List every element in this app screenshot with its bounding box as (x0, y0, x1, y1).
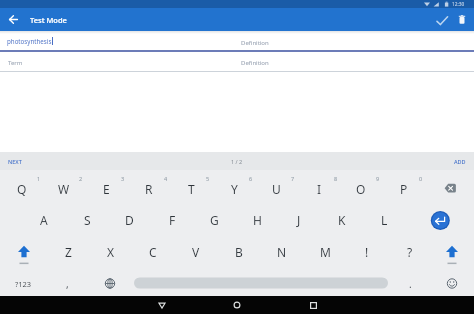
button[interactable]: H (240, 208, 274, 232)
button[interactable]: Y (217, 177, 251, 201)
staticText: K (338, 212, 346, 228)
button[interactable]: K (325, 208, 359, 232)
staticText: 1 (37, 175, 41, 182)
staticText: 2 (79, 175, 83, 182)
button[interactable]: ADD (414, 152, 474, 170)
staticText: E (103, 181, 110, 197)
staticText: A (40, 212, 48, 228)
button[interactable]: C (136, 240, 170, 264)
staticText: Definition (241, 59, 269, 67)
button[interactable]: photosynthesis (7, 37, 53, 45)
staticText: Q (17, 181, 27, 197)
staticText: O (356, 181, 366, 197)
staticText: F (169, 212, 176, 228)
button[interactable]: G (197, 208, 231, 232)
button[interactable]: X (94, 240, 128, 264)
button[interactable]: I (302, 177, 336, 201)
button[interactable]: , (50, 272, 84, 296)
button[interactable]: ?123 (6, 272, 40, 296)
button[interactable]: F (155, 208, 189, 232)
staticText: 3 (121, 175, 125, 182)
button[interactable]: N (265, 240, 299, 264)
staticText: D (125, 212, 134, 228)
button[interactable] (432, 11, 453, 30)
staticText: 4 (164, 175, 168, 182)
staticText: Y (231, 181, 238, 197)
staticText: W (58, 181, 70, 197)
button[interactable] (10, 241, 38, 263)
button[interactable] (223, 296, 251, 314)
button[interactable] (299, 296, 327, 314)
staticText: ? (407, 244, 413, 260)
staticText: P (400, 181, 408, 197)
staticText: T (188, 181, 195, 197)
staticText: C (149, 244, 157, 260)
staticText: Term (8, 59, 23, 67)
staticText: J (297, 212, 301, 228)
staticText: M (320, 244, 331, 260)
button[interactable]: A (27, 208, 61, 232)
button[interactable] (438, 241, 466, 263)
staticText: 12:30 (452, 1, 465, 8)
button[interactable] (436, 177, 466, 199)
staticText: Test Mode (30, 15, 67, 25)
button[interactable]: R (132, 177, 166, 201)
button[interactable] (453, 10, 471, 29)
staticText: 6 (249, 175, 253, 182)
button[interactable] (130, 272, 390, 294)
staticText: , (66, 277, 69, 291)
button[interactable]: U (259, 177, 293, 201)
button[interactable] (427, 209, 453, 231)
button[interactable] (5, 10, 21, 29)
staticText: NEXT (8, 158, 22, 165)
button[interactable]: ? (393, 240, 427, 264)
staticText: 9 (376, 175, 380, 182)
button[interactable]: O (344, 177, 378, 201)
button[interactable]: W (47, 177, 81, 201)
staticText: 7 (291, 175, 295, 182)
button[interactable]: ! (350, 240, 384, 264)
button[interactable]: E (89, 177, 123, 201)
button[interactable]: Z (51, 240, 85, 264)
staticText: U (272, 181, 281, 197)
button[interactable] (96, 272, 124, 294)
staticText: 5 (206, 175, 210, 182)
staticText: G (210, 212, 219, 228)
staticText: . (409, 277, 412, 291)
staticText: S (84, 212, 91, 228)
staticText: N (277, 244, 287, 260)
staticText: H (253, 212, 262, 228)
staticText: ADD (454, 158, 466, 165)
staticText: Z (65, 244, 72, 260)
staticText: L (381, 212, 388, 228)
staticText: ! (365, 244, 369, 260)
staticText: ?123 (15, 279, 32, 289)
staticText: V (192, 244, 200, 260)
button[interactable]: . (393, 272, 427, 296)
staticText: B (235, 244, 243, 260)
button[interactable]: L (367, 208, 401, 232)
staticText: Definition (241, 39, 269, 47)
button[interactable]: B (222, 240, 256, 264)
staticText: photosynthesis (7, 37, 52, 45)
button[interactable]: S (70, 208, 104, 232)
button[interactable]: T (174, 177, 208, 201)
staticText: R (145, 181, 153, 197)
button[interactable]: M (308, 240, 342, 264)
button[interactable]: D (112, 208, 146, 232)
staticText: 0 (419, 175, 423, 182)
staticText: X (107, 244, 115, 260)
button[interactable]: Q (5, 177, 39, 201)
button[interactable]: P (387, 177, 421, 201)
button[interactable]: V (179, 240, 213, 264)
button[interactable] (148, 296, 176, 314)
button[interactable]: J (282, 208, 316, 232)
button[interactable]: NEXT (0, 152, 60, 170)
staticText: 8 (334, 175, 338, 182)
button[interactable] (438, 272, 466, 294)
staticText: I (317, 181, 322, 197)
staticText: 1 / 2 (231, 158, 243, 165)
